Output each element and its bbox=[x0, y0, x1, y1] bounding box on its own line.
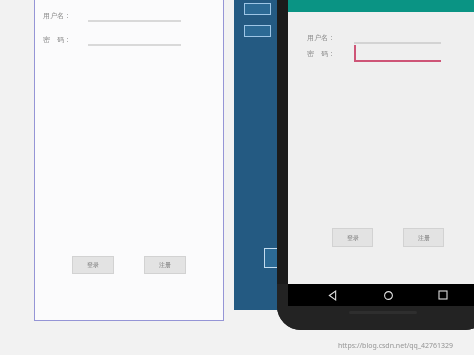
button[interactable]: 注册 bbox=[144, 256, 186, 274]
button[interactable]: 注册 bbox=[403, 228, 444, 247]
staticText: 密 码： bbox=[43, 35, 71, 45]
staticText: https://blog.csdn.net/qq_42761329 bbox=[338, 341, 454, 351]
button[interactable]: 登录 bbox=[332, 228, 373, 247]
staticText: 登录 bbox=[87, 261, 99, 269]
staticText: 注册 bbox=[418, 234, 430, 242]
button[interactable]: Back bbox=[321, 284, 343, 306]
staticText: 用户名： bbox=[43, 11, 71, 20]
button[interactable]: 登录 bbox=[72, 256, 114, 274]
button[interactable]: Recents bbox=[432, 284, 454, 306]
staticText: 注册 bbox=[159, 261, 171, 269]
staticText: 密 码： bbox=[307, 49, 335, 59]
staticText: 用户名： bbox=[307, 33, 335, 42]
staticText: 登录 bbox=[347, 234, 359, 242]
button[interactable]: Home bbox=[377, 284, 399, 306]
